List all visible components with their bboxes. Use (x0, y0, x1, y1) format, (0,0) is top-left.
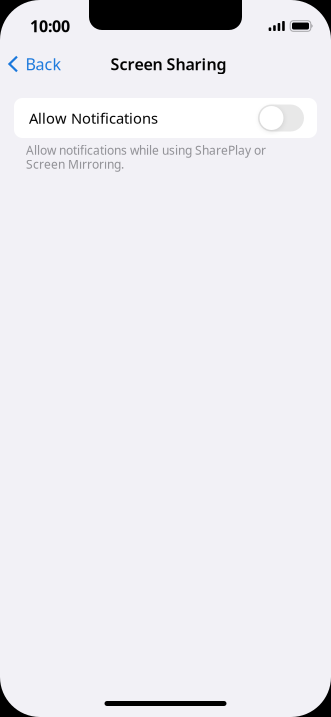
staticText: 10:00 (30, 15, 70, 37)
staticText: Back (25, 53, 61, 75)
button[interactable]: Allow Notifications, off (258, 104, 304, 131)
staticText: Allow notifications while using SharePla… (26, 143, 266, 171)
button[interactable]: Allow Notifications (14, 98, 317, 138)
button[interactable]: Back (0, 47, 71, 81)
staticText: Screen Sharing (110, 53, 226, 75)
staticText: Allow Notifications (29, 108, 158, 128)
